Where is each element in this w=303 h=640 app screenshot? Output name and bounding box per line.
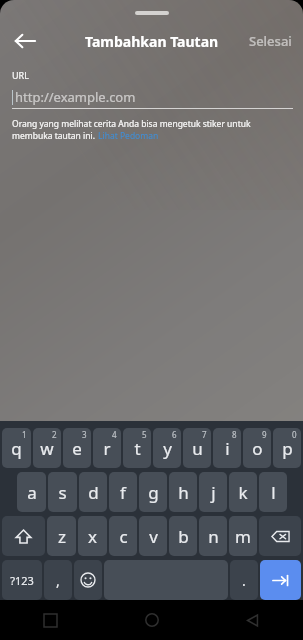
staticText: 6 (172, 429, 177, 440)
staticText: http://example.com (15, 88, 136, 106)
button[interactable]: n (199, 516, 227, 556)
staticText: z (58, 525, 66, 548)
button[interactable]: Enter (260, 560, 301, 600)
staticText: 4 (112, 429, 117, 440)
button[interactable]: j (199, 472, 227, 512)
button[interactable]: c (109, 516, 137, 556)
staticText: c (119, 525, 128, 548)
button[interactable]: i (213, 428, 241, 468)
button[interactable]: q (2, 428, 31, 468)
staticText: . (242, 571, 246, 590)
staticText: h (178, 481, 189, 504)
staticText: j (211, 481, 216, 504)
button[interactable]: v (139, 516, 167, 556)
button[interactable]: k (229, 472, 257, 512)
staticText: a (27, 481, 37, 504)
button[interactable]: s (48, 472, 77, 512)
staticText: Lihat Pedoman (98, 130, 159, 142)
staticText: r (103, 437, 111, 460)
button[interactable]: d (79, 472, 107, 512)
button[interactable]: p (273, 428, 301, 468)
staticText: 2 (52, 429, 57, 440)
staticText: e (72, 437, 82, 460)
staticText: 5 (142, 429, 147, 440)
staticText: ?123 (10, 573, 34, 588)
button[interactable]: w (33, 428, 61, 468)
staticText: Selesai (249, 32, 292, 50)
button[interactable]: Emoji (74, 560, 102, 600)
staticText: g (148, 481, 159, 504)
staticText: u (192, 437, 203, 460)
button[interactable]: , (44, 560, 72, 600)
staticText: i (225, 437, 230, 460)
button[interactable]: Back (5, 22, 45, 60)
button[interactable]: l (259, 472, 287, 512)
button[interactable]: o (243, 428, 271, 468)
button[interactable]: Recents (0, 600, 101, 640)
button[interactable]: u (183, 428, 211, 468)
staticText: membuka tautan ini. (12, 130, 98, 142)
button[interactable]: z (47, 516, 76, 556)
button[interactable]: m (229, 516, 257, 556)
staticText: URL (12, 69, 29, 81)
staticText: x (88, 525, 97, 548)
staticText: t (134, 437, 141, 460)
button[interactable]: f (109, 472, 137, 512)
button[interactable]: Back (202, 600, 303, 640)
staticText: w (40, 437, 54, 460)
button[interactable]: y (153, 428, 181, 468)
staticText: Orang yang melihat cerita Anda bisa meng… (12, 118, 251, 130)
button[interactable]: ?123 (2, 560, 42, 600)
staticText: 7 (202, 429, 207, 440)
button[interactable]: Lihat Pedoman (98, 130, 159, 142)
staticText: k (238, 481, 248, 504)
button[interactable]: Backspace (259, 516, 301, 556)
button[interactable]: . (230, 560, 258, 600)
staticText: q (11, 437, 22, 460)
staticText: p (282, 437, 293, 460)
staticText: 1 (22, 429, 27, 440)
staticText: f (120, 481, 126, 504)
staticText: y (163, 437, 172, 460)
button[interactable]: e (63, 428, 91, 468)
button[interactable]: Home (101, 600, 202, 640)
staticText: n (208, 525, 219, 548)
staticText: v (149, 525, 158, 548)
staticText: l (271, 481, 276, 504)
button[interactable]: Selesai (245, 26, 296, 56)
button[interactable]: x (78, 516, 107, 556)
button[interactable]: h (169, 472, 197, 512)
button[interactable]: Shift (2, 516, 45, 556)
staticText: s (58, 481, 67, 504)
staticText: m (235, 525, 251, 548)
button[interactable]: t (123, 428, 151, 468)
staticText: 0 (292, 429, 297, 440)
staticText: 9 (262, 429, 267, 440)
button[interactable]: g (139, 472, 167, 512)
staticText: o (252, 437, 263, 460)
staticText: 8 (232, 429, 237, 440)
button[interactable]: r (93, 428, 121, 468)
button[interactable]: http://example.com (12, 86, 293, 108)
button[interactable]: a (17, 472, 46, 512)
staticText: Tambahkan Tautan (85, 32, 219, 51)
button[interactable]: b (169, 516, 197, 556)
staticText: 3 (82, 429, 87, 440)
staticText: d (88, 481, 99, 504)
staticText: b (178, 525, 189, 548)
staticText: , (56, 571, 60, 590)
